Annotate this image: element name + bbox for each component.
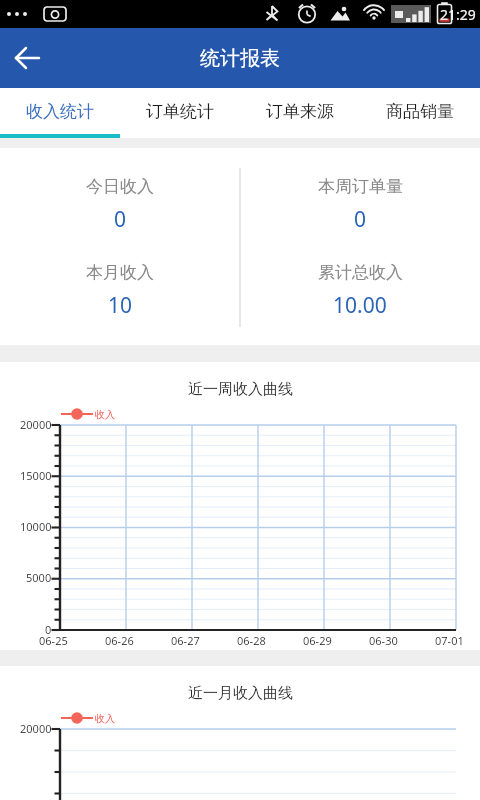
staticText: 近一周收入曲线: [188, 380, 293, 399]
staticText: 20000: [20, 417, 52, 432]
staticText: 06-28: [237, 633, 266, 648]
button[interactable]: Back: [0, 30, 56, 86]
staticText: 0: [45, 622, 52, 637]
staticText: 商品销量: [386, 101, 454, 122]
staticText: 0: [114, 205, 127, 234]
staticText: 06-25: [39, 633, 68, 648]
staticText: 收入: [95, 408, 115, 421]
staticText: 统计报表: [200, 46, 280, 71]
staticText: 本周订单量: [318, 176, 403, 197]
staticText: 21:29: [440, 5, 476, 24]
staticText: 06-30: [369, 633, 398, 648]
staticText: 订单统计: [146, 101, 214, 122]
button[interactable]: 收入统计: [0, 88, 120, 134]
staticText: 本月收入: [86, 262, 154, 283]
staticText: 近一月收入曲线: [188, 684, 293, 703]
staticText: 07-01: [435, 633, 464, 648]
button[interactable]: 订单来源: [240, 88, 360, 134]
staticText: 06-29: [303, 633, 332, 648]
staticText: 06-27: [171, 633, 200, 648]
staticText: 0: [354, 205, 367, 234]
staticText: 累计总收入: [318, 262, 403, 283]
staticText: 收入统计: [26, 101, 94, 122]
staticText: 06-26: [105, 633, 134, 648]
staticText: 收入: [95, 712, 115, 725]
staticText: 10.00: [333, 291, 387, 320]
staticText: 10: [108, 291, 133, 320]
staticText: 今日收入: [86, 176, 154, 197]
button[interactable]: 商品销量: [360, 88, 480, 134]
staticText: 5000: [26, 570, 52, 585]
staticText: 20000: [20, 721, 52, 736]
staticText: 10000: [20, 519, 52, 534]
staticText: 订单来源: [266, 101, 334, 122]
button[interactable]: 订单统计: [120, 88, 240, 134]
staticText: 15000: [20, 468, 52, 483]
